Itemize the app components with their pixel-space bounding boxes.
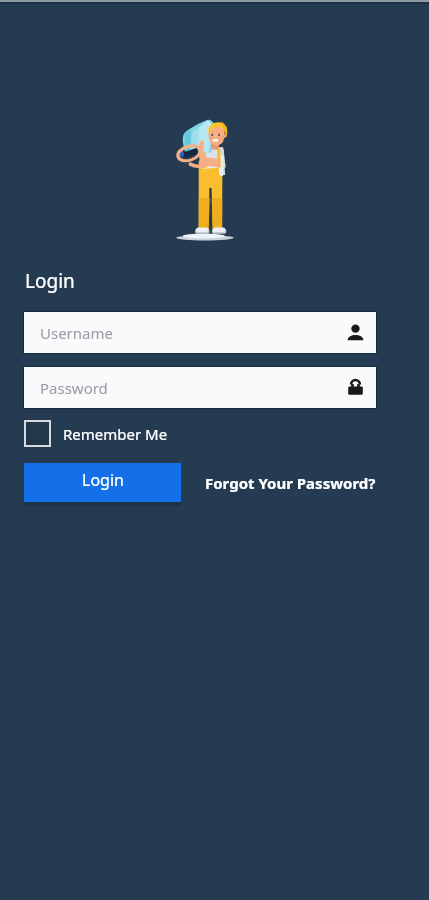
button[interactable]: Login [24,463,181,502]
other: Username [347,324,364,341]
other: Password [347,379,364,396]
staticText: Login [25,268,75,294]
button[interactable]: Password [24,367,376,408]
button[interactable]: Username [24,312,376,353]
staticText: Password [40,378,108,398]
staticText: Username [40,323,113,343]
staticText: Forgot Your Password? [205,473,376,493]
button[interactable]: Forgot Your Password? [205,473,376,493]
staticText: Login [82,469,124,491]
staticText: Remember Me [63,424,168,444]
button[interactable]: Remember Me [24,420,168,447]
